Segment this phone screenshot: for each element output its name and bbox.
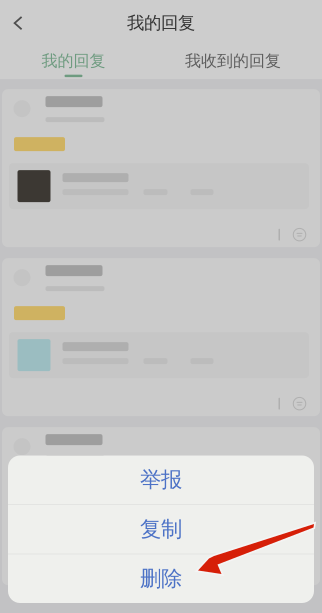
button[interactable]: 我收到的回复	[147, 46, 319, 79]
staticText: 删除	[140, 566, 182, 592]
button[interactable]: 举报	[8, 455, 314, 504]
staticText: 我的回复	[127, 12, 195, 34]
staticText: 我的回复	[41, 51, 105, 71]
button[interactable]: 删除	[8, 554, 314, 603]
staticText: 我收到的回复	[185, 51, 281, 71]
button[interactable]: 复制	[8, 505, 314, 553]
button[interactable]	[2, 427, 320, 585]
button[interactable]	[2, 89, 320, 247]
staticText: 举报	[140, 467, 182, 493]
button[interactable]: 返回	[0, 5, 37, 40]
staticText: 复制	[140, 516, 182, 542]
button[interactable]	[2, 258, 320, 416]
button[interactable]: 我的回复	[0, 46, 147, 79]
